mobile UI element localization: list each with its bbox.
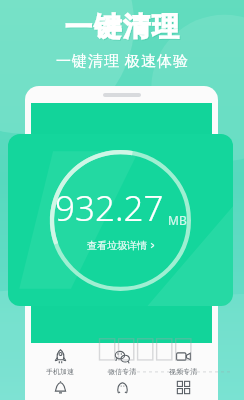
staticText: 一键清理 [64, 10, 180, 44]
button[interactable]: 932.27 [8, 134, 233, 306]
staticText: 微信专清 [108, 367, 136, 376]
button[interactable]: 查看垃圾详情 [87, 239, 155, 252]
button[interactable]: 手机加速 [33, 349, 87, 376]
button[interactable]: QQ clean [95, 380, 149, 395]
staticText: 一键清理 极速体验 [56, 50, 189, 70]
staticText: 一键清理 [65, 11, 181, 45]
button[interactable]: More tools [156, 380, 210, 395]
button[interactable]: 视频专清 [156, 349, 210, 376]
staticText: 932.27 [55, 184, 164, 232]
staticText: MB [168, 212, 187, 228]
button[interactable]: 微信专清 [95, 349, 149, 376]
staticText: 查看垃圾详情 [87, 239, 147, 252]
staticText: 手机加速 [46, 367, 74, 376]
button[interactable]: Notifications [33, 380, 87, 395]
staticText: 视频专清 [169, 367, 197, 376]
